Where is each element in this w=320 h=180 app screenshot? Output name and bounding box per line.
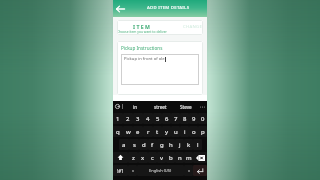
staticText: ADD ITEM DETAILS: [147, 4, 190, 10]
button[interactable]: 3: [133, 113, 143, 124]
button[interactable]: street: [148, 101, 173, 112]
staticText: 6: [165, 115, 169, 123]
button[interactable]: a: [119, 139, 129, 150]
staticText: u: [174, 128, 178, 136]
button[interactable]: 0: [198, 113, 207, 124]
button[interactable]: Steve: [173, 101, 198, 112]
button[interactable]: 1: [113, 113, 123, 124]
button[interactable]: g: [157, 139, 166, 150]
button[interactable]: x: [138, 152, 148, 163]
button[interactable]: ITEM: [117, 20, 203, 35]
staticText: ITEM: [133, 23, 152, 30]
staticText: Choose item you want to deliver: [117, 29, 167, 33]
button[interactable]: Period: [184, 165, 193, 176]
button[interactable]: Enter: [193, 165, 207, 176]
staticText: 3: [136, 115, 140, 123]
button[interactable]: 2: [123, 113, 133, 124]
button[interactable]: 5: [153, 113, 162, 124]
staticText: English (US): [149, 168, 172, 173]
button[interactable]: in: [123, 101, 148, 112]
button[interactable]: y: [162, 126, 171, 137]
staticText: e: [136, 128, 140, 136]
button[interactable]: c: [148, 152, 157, 163]
button[interactable]: z: [128, 152, 138, 163]
button[interactable]: b: [166, 152, 175, 163]
staticText: i: [184, 128, 186, 136]
button[interactable]: Pickup in front of ole: [121, 54, 199, 85]
button[interactable]: 9: [189, 113, 198, 124]
staticText: b: [169, 154, 173, 162]
staticText: x: [141, 154, 145, 162]
staticText: Pickup in front of ole: [124, 56, 165, 62]
staticText: Steve: [180, 104, 192, 110]
staticText: 0: [201, 115, 205, 123]
staticText: t: [156, 128, 159, 136]
staticText: !#1: [117, 168, 124, 174]
staticText: j: [179, 141, 181, 149]
staticText: r: [147, 128, 150, 136]
staticText: 5: [156, 115, 160, 123]
staticText: 7: [174, 115, 178, 123]
button[interactable]: Shift: [113, 152, 128, 163]
staticText: y: [165, 128, 169, 136]
button[interactable]: q: [113, 126, 123, 137]
staticText: m: [186, 154, 192, 162]
staticText: 2: [126, 115, 130, 123]
button[interactable]: !#1: [113, 165, 128, 176]
button[interactable]: n: [175, 152, 184, 163]
button[interactable]: 4: [143, 113, 153, 124]
staticText: 4: [146, 115, 150, 123]
staticText: v: [160, 154, 164, 162]
button[interactable]: k: [184, 139, 193, 150]
staticText: street: [154, 104, 167, 110]
staticText: h: [169, 141, 173, 149]
button[interactable]: m: [184, 152, 193, 163]
button[interactable]: 7: [171, 113, 180, 124]
button[interactable]: u: [171, 126, 180, 137]
button[interactable]: s: [129, 139, 139, 150]
staticText: d: [142, 141, 146, 149]
staticText: w: [126, 128, 131, 136]
staticText: 9: [192, 115, 196, 123]
staticText: f: [151, 141, 154, 149]
button[interactable]: v: [157, 152, 166, 163]
staticText: CHANGE: [183, 23, 203, 29]
button[interactable]: o: [189, 126, 198, 137]
button[interactable]: r: [143, 126, 153, 137]
staticText: q: [116, 128, 120, 136]
staticText: z: [132, 154, 135, 162]
button[interactable]: h: [166, 139, 175, 150]
staticText: k: [187, 141, 191, 149]
button[interactable]: w: [123, 126, 133, 137]
button[interactable]: p: [198, 126, 207, 137]
button[interactable]: d: [139, 139, 148, 150]
button[interactable]: 6: [162, 113, 171, 124]
staticText: Pickup Instructions: [121, 45, 163, 51]
button[interactable]: l: [193, 139, 202, 150]
button[interactable]: Voice input: [113, 101, 122, 112]
button[interactable]: Backspace: [193, 152, 207, 163]
staticText: s: [133, 141, 136, 149]
staticText: g: [160, 141, 164, 149]
button[interactable]: Back: [114, 2, 126, 15]
staticText: 1: [116, 115, 120, 123]
button[interactable]: e: [133, 126, 143, 137]
button[interactable]: j: [175, 139, 184, 150]
button[interactable]: f: [148, 139, 157, 150]
button[interactable]: 8: [180, 113, 189, 124]
staticText: l: [197, 141, 199, 149]
button[interactable]: t: [153, 126, 162, 137]
button[interactable]: More suggestions: [198, 101, 207, 112]
button[interactable]: Comma: [128, 165, 137, 176]
button[interactable]: i: [180, 126, 189, 137]
staticText: a: [122, 141, 126, 149]
staticText: c: [151, 154, 154, 162]
staticText: 8: [183, 115, 187, 123]
staticText: n: [178, 154, 182, 162]
button[interactable]: English (US): [137, 165, 184, 176]
staticText: o: [192, 128, 196, 136]
staticText: p: [201, 128, 205, 136]
staticText: in: [133, 104, 138, 110]
